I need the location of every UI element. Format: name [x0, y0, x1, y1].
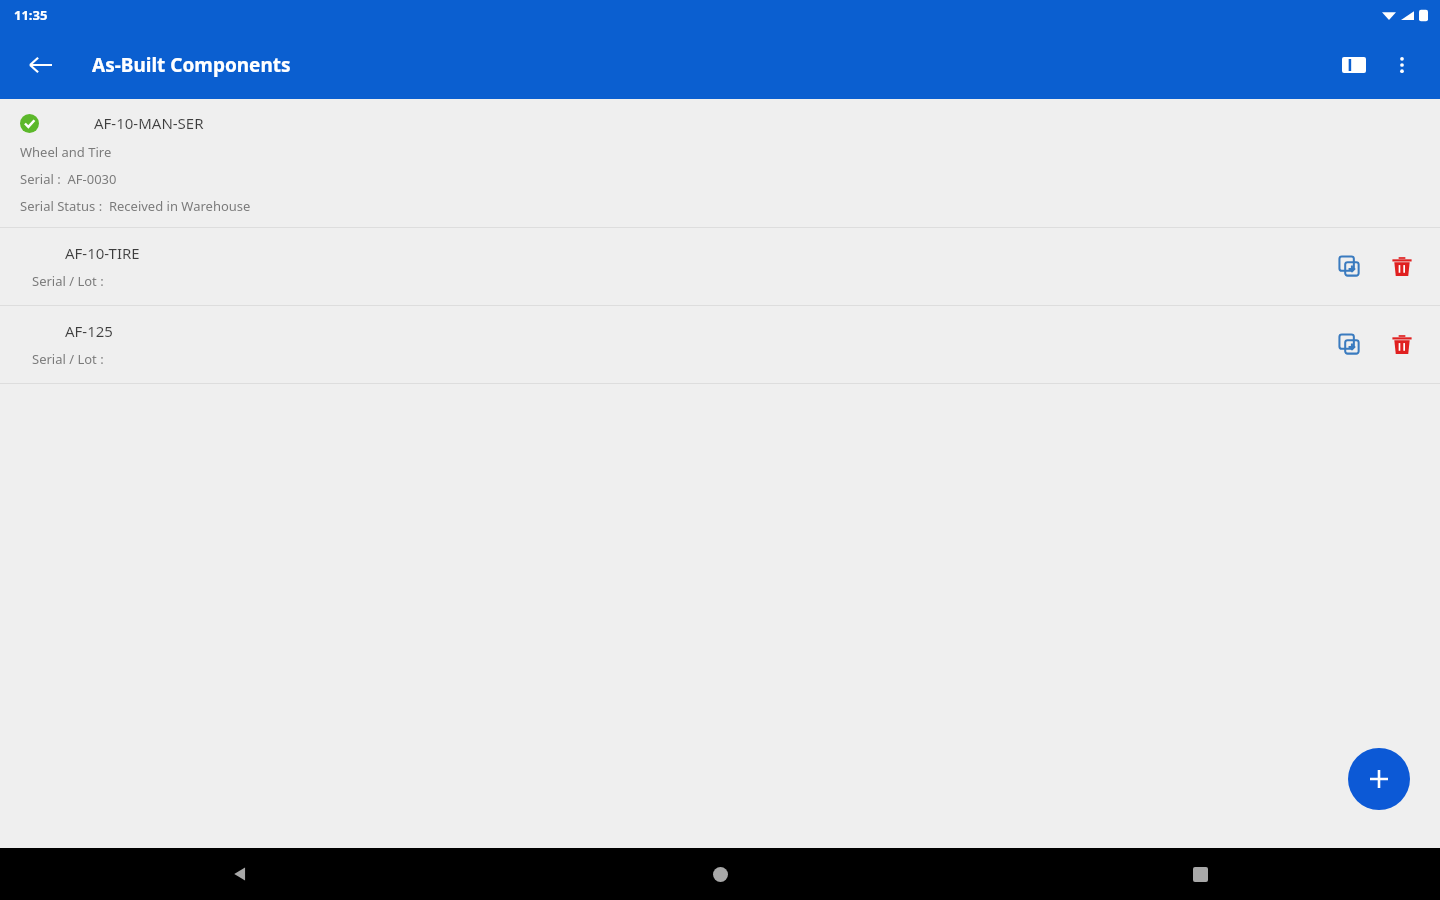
button[interactable]: AF-10-TIRE: [0, 228, 1440, 305]
staticText: Serial / Lot :: [32, 350, 104, 368]
staticText: Serial / Lot :: [32, 272, 104, 290]
button[interactable]: AF-125: [0, 306, 1440, 383]
staticText: Serial : AF-0030: [20, 170, 117, 188]
button[interactable]: Duplicate: [1326, 321, 1374, 369]
staticText: Serial Status : Received in Warehouse: [20, 197, 251, 215]
button[interactable]: Delete: [1378, 321, 1426, 369]
button[interactable]: Delete: [1378, 243, 1426, 291]
button[interactable]: Back: [18, 42, 64, 88]
button[interactable]: Recent apps: [1178, 852, 1222, 896]
staticText: AF-10-MAN-SER: [94, 113, 204, 133]
staticText: Wheel and Tire: [20, 143, 112, 161]
button[interactable]: Back: [218, 852, 262, 896]
button[interactable]: More options: [1378, 41, 1426, 89]
button[interactable]: AF-10-MAN-SER: [0, 99, 1440, 227]
staticText: As-Built Components: [92, 52, 291, 78]
button[interactable]: View mode: [1330, 41, 1378, 89]
button[interactable]: Duplicate: [1326, 243, 1374, 291]
staticText: 11:35: [14, 6, 48, 24]
button[interactable]: Add component: [1348, 748, 1410, 810]
staticText: AF-10-TIRE: [65, 243, 140, 263]
staticText: AF-125: [65, 321, 113, 341]
button[interactable]: Home: [698, 852, 742, 896]
